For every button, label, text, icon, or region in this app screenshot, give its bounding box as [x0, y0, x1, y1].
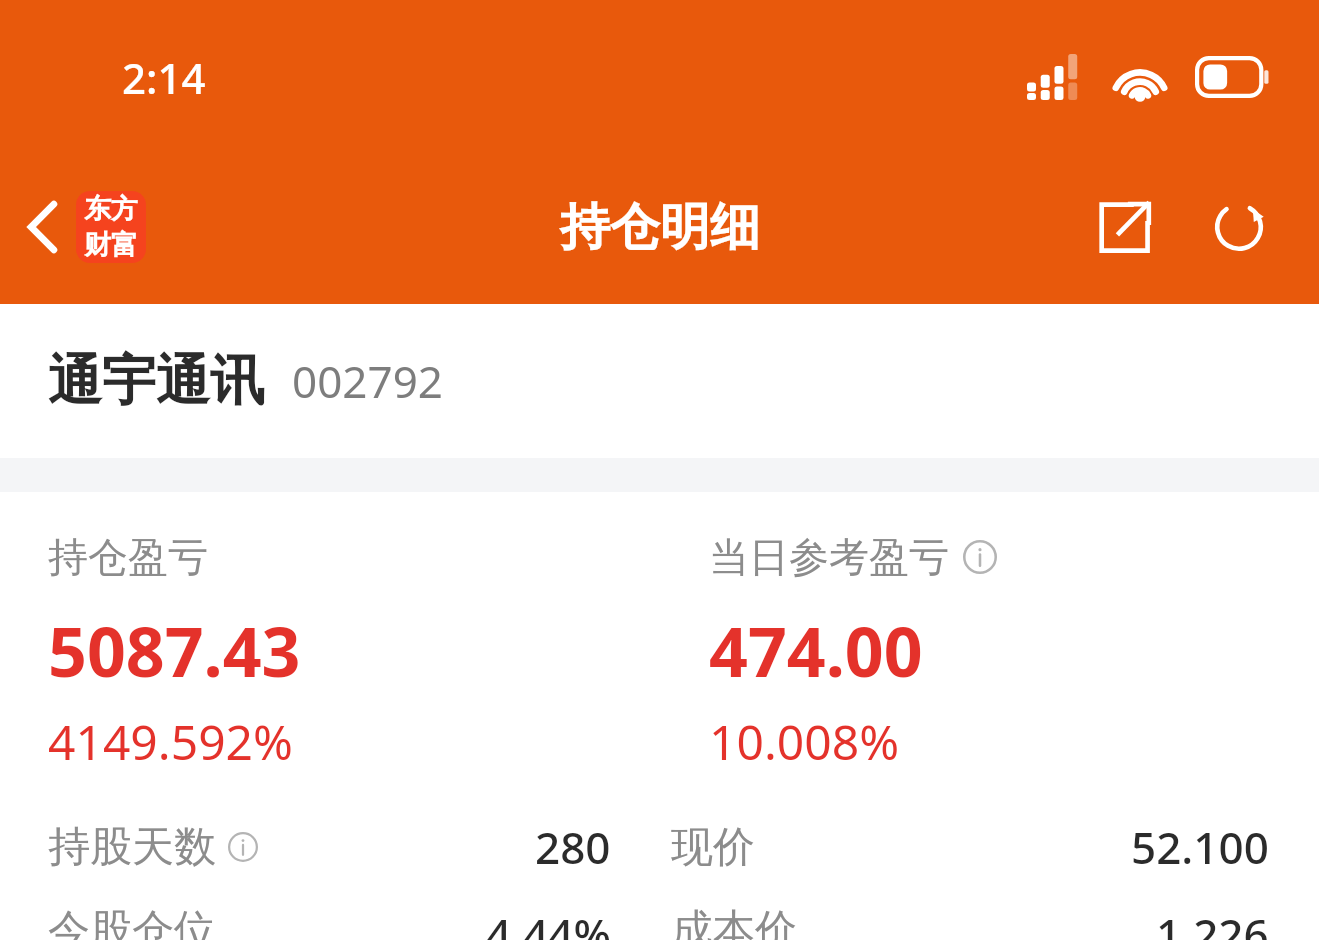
- staticText: 今股仓位: [48, 904, 216, 940]
- staticText: 持股天数: [48, 821, 216, 874]
- staticText: 280: [535, 817, 611, 877]
- staticText: 2:14: [122, 49, 206, 106]
- button[interactable]: Refresh: [1195, 183, 1283, 271]
- staticText: 1.226: [1156, 904, 1269, 940]
- staticText: 持仓盈亏: [48, 532, 208, 582]
- staticText: 10.008%: [709, 709, 900, 774]
- staticText: 现价: [671, 821, 755, 874]
- button[interactable]: Share: [1081, 184, 1167, 270]
- staticText: 当日参考盈亏: [709, 532, 949, 582]
- staticText: 持仓明细: [560, 196, 760, 259]
- staticText: 财富: [84, 228, 138, 262]
- staticText: 4149.592%: [48, 709, 293, 774]
- staticText: 4.44%: [486, 904, 611, 940]
- staticText: 成本价: [671, 904, 797, 940]
- button[interactable]: Back: [0, 181, 162, 273]
- staticText: 52.100: [1131, 817, 1269, 877]
- staticText: 通宇通讯: [48, 347, 264, 415]
- staticText: 002792: [292, 351, 444, 411]
- staticText: 474.00: [709, 604, 923, 697]
- staticText: 东方: [84, 192, 138, 226]
- button[interactable]: 通宇通讯: [0, 304, 1319, 458]
- staticText: 5087.43: [48, 604, 301, 697]
- button[interactable]: 今股仓位: [0, 904, 1319, 940]
- button[interactable]: 持股天数: [0, 816, 1319, 878]
- button[interactable]: Info about daily reference profit: [963, 540, 997, 574]
